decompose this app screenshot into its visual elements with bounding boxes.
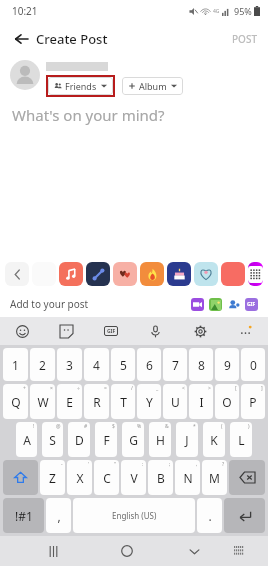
button[interactable]: * — [176, 422, 198, 457]
button[interactable]: POST — [222, 26, 268, 52]
button[interactable]: @ — [42, 422, 63, 457]
button[interactable]: Attachment — [245, 298, 258, 311]
button[interactable]: Sticker — [86, 262, 110, 286]
button[interactable]: Sticker — [221, 262, 245, 286]
staticText: 6 — [146, 357, 153, 373]
button[interactable]: - — [40, 460, 65, 495]
staticText: , — [57, 508, 61, 524]
button[interactable]: 8 — [189, 348, 213, 381]
staticText: C — [103, 470, 111, 486]
button[interactable]: / — [111, 384, 135, 419]
staticText: 3 — [66, 357, 73, 373]
staticText: U — [171, 394, 180, 410]
button[interactable]: English (US) — [73, 498, 195, 533]
button[interactable]: More — [223, 317, 268, 345]
button[interactable]: # — [68, 422, 90, 457]
staticText: D — [75, 432, 84, 448]
button[interactable]: Friends — [48, 77, 113, 95]
button[interactable]: ] — [241, 384, 265, 419]
staticText: 1 — [12, 357, 19, 373]
button[interactable]: Voice input — [133, 317, 178, 345]
button[interactable]: Shift — [3, 460, 38, 495]
button[interactable]: Emoji — [0, 317, 44, 345]
staticText: % — [137, 423, 142, 430]
button[interactable]: Sticker — [113, 262, 137, 286]
button[interactable]: Recents — [39, 537, 67, 565]
button[interactable]: Attachment — [209, 298, 222, 311]
button[interactable]: 9 — [215, 348, 239, 381]
staticText: + — [23, 385, 26, 392]
button[interactable]: , — [46, 498, 71, 533]
button[interactable]: Tag people — [227, 298, 240, 311]
button[interactable]: ÷ — [57, 384, 82, 419]
staticText: G — [129, 432, 138, 448]
button[interactable]: ( — [203, 422, 225, 457]
button[interactable]: 0 — [241, 348, 265, 381]
staticText: I — [199, 394, 204, 410]
staticText: # — [84, 423, 88, 430]
button[interactable]: Back — [8, 26, 34, 52]
staticText: , — [196, 461, 198, 468]
button[interactable]: !#1 — [3, 498, 44, 533]
button[interactable]: 1 — [3, 348, 28, 381]
button[interactable]: ! — [16, 422, 37, 457]
button[interactable]: Previous — [5, 262, 29, 286]
button[interactable]: 6 — [137, 348, 161, 381]
button[interactable]: ) — [230, 422, 252, 457]
button[interactable]: , — [175, 460, 200, 495]
staticText: Add to your post — [10, 297, 89, 311]
button[interactable]: < — [163, 384, 187, 419]
button[interactable]: Backspace — [229, 460, 265, 495]
button[interactable]: = — [84, 384, 109, 419]
staticText: N — [183, 470, 193, 486]
staticText: & — [165, 423, 169, 430]
button[interactable]: > — [189, 384, 213, 419]
staticText: What's on your mind? — [12, 105, 165, 125]
button[interactable]: ; — [148, 460, 173, 495]
button[interactable]: ? — [202, 460, 227, 495]
staticText: E — [66, 394, 73, 410]
button[interactable]: % — [122, 422, 144, 457]
button[interactable]: Sticker — [140, 262, 164, 286]
button[interactable]: " — [94, 460, 119, 495]
button[interactable]: [ — [215, 384, 239, 419]
button[interactable]: Sticker — [167, 262, 191, 286]
button[interactable]: _ — [137, 384, 161, 419]
staticText: GIF — [247, 301, 256, 308]
staticText: W — [37, 394, 49, 410]
staticText: 0 — [250, 357, 257, 373]
staticText: @ — [56, 423, 61, 430]
button[interactable]: GIF — [88, 317, 133, 345]
button[interactable]: All stickers — [248, 262, 263, 286]
button[interactable]: Album — [122, 77, 183, 95]
staticText: ' — [88, 461, 90, 468]
button[interactable]: Enter — [224, 498, 265, 533]
button[interactable]: 2 — [30, 348, 55, 381]
button[interactable]: Hide keyboard — [180, 537, 208, 565]
button[interactable]: 4 — [84, 348, 109, 381]
staticText: < — [182, 385, 185, 392]
button[interactable]: + — [3, 384, 28, 419]
button[interactable]: Attachment — [191, 298, 204, 311]
button[interactable]: Sticker — [59, 262, 83, 286]
button[interactable]: Home — [113, 537, 141, 565]
staticText: J — [185, 432, 189, 448]
staticText: 5 — [120, 357, 127, 373]
button[interactable]: Sticker — [44, 317, 88, 345]
button[interactable]: $ — [95, 422, 117, 457]
button[interactable]: 5 — [111, 348, 135, 381]
button[interactable]: Sticker — [194, 262, 218, 286]
button[interactable]: . — [197, 498, 222, 533]
staticText: ) — [248, 423, 250, 430]
button[interactable]: 3 — [57, 348, 82, 381]
button[interactable]: : — [121, 460, 146, 495]
button[interactable]: Settings — [178, 317, 223, 345]
button[interactable]: ' — [67, 460, 92, 495]
button[interactable]: × — [30, 384, 55, 419]
button[interactable]: 7 — [163, 348, 187, 381]
staticText: B — [157, 470, 165, 486]
staticText: ; — [169, 461, 171, 468]
button[interactable]: Switch keyboard — [226, 538, 252, 564]
button[interactable]: & — [149, 422, 171, 457]
